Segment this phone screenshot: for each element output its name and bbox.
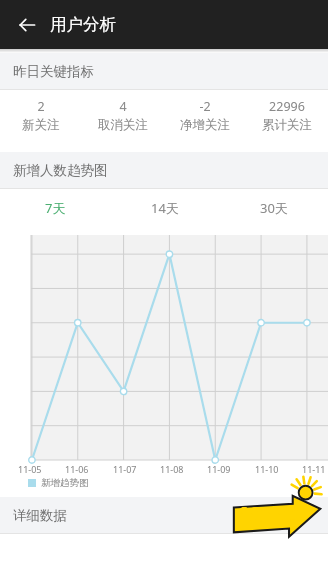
button[interactable]: Back xyxy=(8,6,46,44)
staticText: -2 xyxy=(199,98,211,115)
staticText: 新增人数趋势图 xyxy=(13,162,108,179)
staticText: 11-06 xyxy=(65,463,89,475)
button[interactable]: 7天 xyxy=(0,189,110,227)
staticText: 22996 xyxy=(269,98,305,115)
staticText: 取消关注 xyxy=(98,117,148,133)
staticText: 11-07 xyxy=(113,463,137,475)
button[interactable]: 4 xyxy=(82,98,164,133)
staticText: 11-05 xyxy=(18,463,42,475)
button[interactable]: -2 xyxy=(164,98,246,133)
staticText: 30天 xyxy=(260,199,288,217)
staticText: 用户分析 xyxy=(50,14,116,35)
staticText: 2 xyxy=(37,98,45,115)
staticText: 11-11 xyxy=(302,463,326,475)
staticText: 净增关注 xyxy=(180,117,230,133)
staticText: 11-09 xyxy=(207,463,231,475)
staticText: 新关注 xyxy=(22,117,60,133)
button[interactable]: 30天 xyxy=(219,189,328,227)
staticText: 4 xyxy=(119,98,127,115)
staticText: 详细数据 xyxy=(13,507,67,524)
staticText: 昨日关键指标 xyxy=(13,63,94,80)
staticText: 18183 xyxy=(236,498,304,529)
staticText: 11-10 xyxy=(255,463,279,475)
button[interactable]: 22996 xyxy=(246,98,328,133)
staticText: 14天 xyxy=(151,199,179,217)
staticText: 累计关注 xyxy=(262,117,312,133)
staticText: 新增趋势图 xyxy=(41,477,89,489)
button[interactable]: 14天 xyxy=(110,189,219,227)
staticText: 11-08 xyxy=(160,463,184,475)
button[interactable]: 2 xyxy=(0,98,82,133)
staticText: 7天 xyxy=(45,199,66,217)
